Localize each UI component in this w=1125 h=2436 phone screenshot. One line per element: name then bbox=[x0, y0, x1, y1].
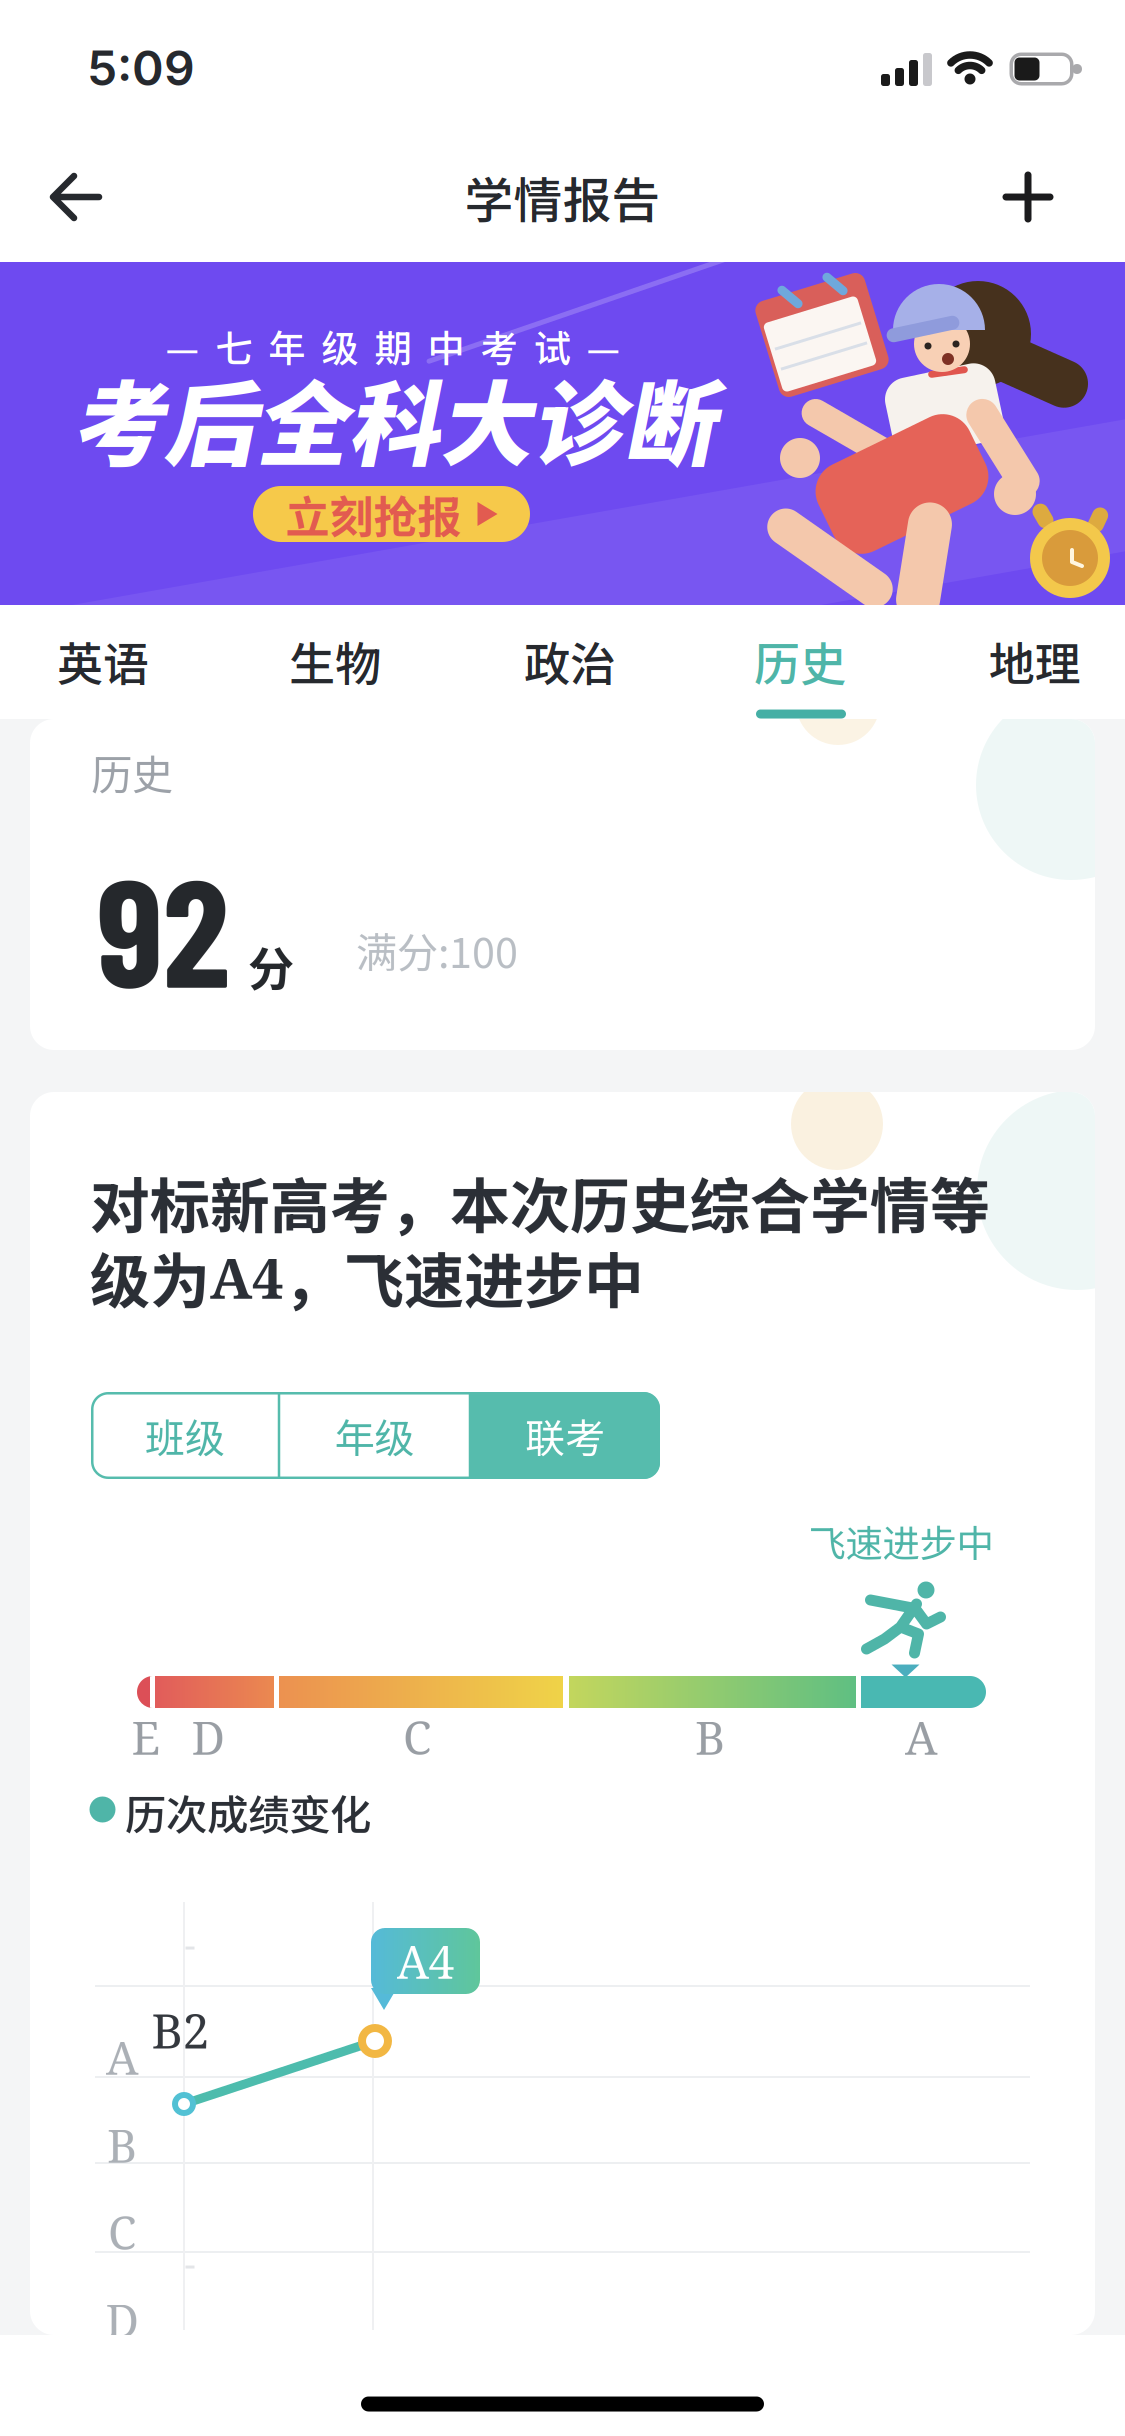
staticText: D bbox=[105, 2289, 138, 2351]
staticText: ，飞速进步中 bbox=[284, 1234, 644, 1320]
staticText: 历次成绩变化 bbox=[125, 1782, 371, 1842]
button[interactable]: 历史 bbox=[705, 611, 895, 711]
staticText: 政治 bbox=[524, 628, 616, 694]
staticText: A4 bbox=[396, 1930, 454, 1992]
staticText: A bbox=[905, 1706, 937, 1768]
button[interactable]: 生物 bbox=[240, 611, 430, 711]
button[interactable]: 政治 bbox=[475, 611, 665, 711]
staticText: 92 bbox=[97, 836, 230, 1018]
staticText: 立刻抢报 bbox=[285, 482, 461, 546]
staticText: 生物 bbox=[289, 628, 381, 694]
staticText: 满分:100 bbox=[356, 920, 518, 980]
staticText: 对标新高考，本次历史综合学情等 bbox=[90, 1159, 990, 1245]
button[interactable]: 班级 bbox=[92, 1392, 278, 1479]
button[interactable]: 地理 bbox=[940, 611, 1125, 711]
staticText: 考后全科大诊断 bbox=[71, 351, 715, 485]
staticText: 联考 bbox=[525, 1406, 605, 1464]
staticText: 地理 bbox=[989, 628, 1081, 694]
staticText: B bbox=[107, 2114, 137, 2176]
staticText: 飞速进步中 bbox=[808, 1514, 993, 1568]
staticText: B bbox=[695, 1706, 725, 1768]
button[interactable]: Add bbox=[1004, 173, 1052, 221]
staticText: C bbox=[403, 1706, 431, 1768]
staticText: C bbox=[108, 2201, 136, 2263]
staticText: B2 bbox=[151, 1997, 209, 2063]
staticText: 英语 bbox=[57, 628, 149, 694]
staticText: A4 bbox=[210, 1239, 284, 1315]
staticText: A bbox=[106, 2026, 138, 2088]
staticText: 班级 bbox=[145, 1406, 225, 1464]
staticText: 年级 bbox=[334, 1406, 414, 1464]
staticText: 历史 bbox=[754, 628, 846, 694]
staticText: E bbox=[131, 1706, 160, 1768]
button[interactable]: 立刻抢报 bbox=[253, 482, 530, 546]
staticText: D bbox=[191, 1706, 224, 1768]
button[interactable]: 联考 bbox=[472, 1392, 658, 1479]
staticText: 分 bbox=[248, 933, 294, 999]
button[interactable]: 年级 bbox=[281, 1392, 467, 1479]
staticText: — 七 年 级 期 中 考 试 — bbox=[165, 319, 620, 373]
staticText: 级为 bbox=[90, 1234, 210, 1320]
staticText: 历史 bbox=[91, 742, 173, 802]
button[interactable]: 英语 bbox=[8, 611, 198, 711]
button[interactable]: Back bbox=[51, 168, 101, 226]
staticText: 学情报告 bbox=[464, 162, 660, 232]
staticText: 5:09 bbox=[87, 39, 195, 97]
